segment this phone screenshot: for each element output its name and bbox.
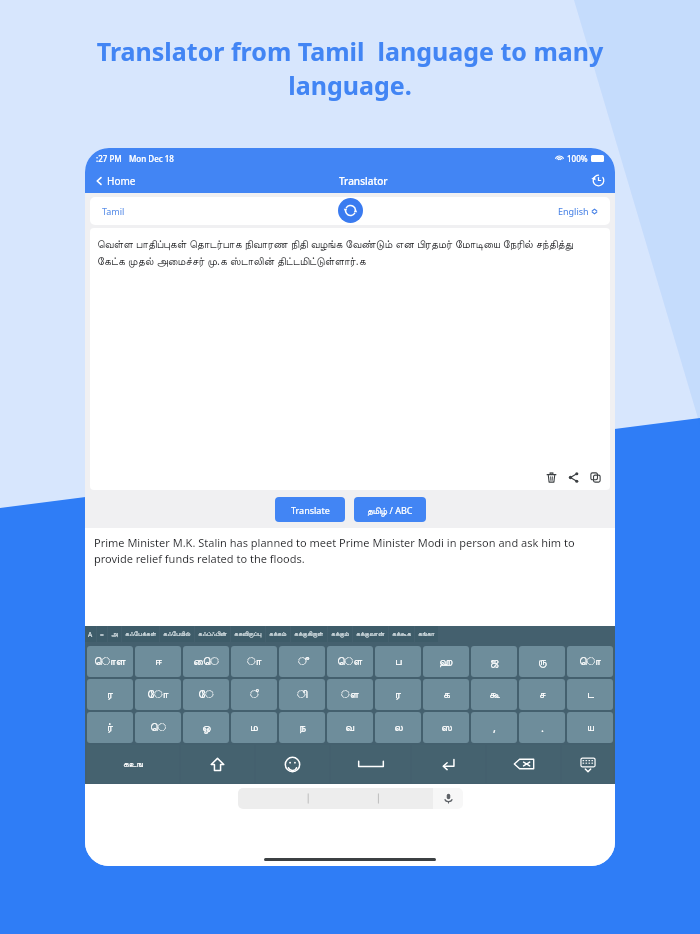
button[interactable]: ௌ [327, 646, 373, 677]
button[interactable]: Home [92, 172, 138, 190]
staticText: ஂ [250, 689, 259, 700]
button[interactable]: கங்கா [415, 626, 438, 642]
button[interactable]: History [589, 171, 608, 190]
button[interactable]: ஈ [135, 646, 181, 677]
staticText: கஉங [123, 760, 143, 769]
button[interactable]: Space [331, 745, 410, 783]
staticText: A [88, 630, 93, 639]
staticText: :27 PM [96, 153, 122, 164]
staticText: Translator from Tamil language to many l… [42, 34, 658, 103]
staticText: ந [299, 722, 306, 733]
staticText: 100% [567, 153, 588, 164]
button[interactable]: கஃப்ஃபின் [195, 626, 230, 642]
button[interactable]: Translate [275, 497, 345, 522]
button[interactable]: ஸ [423, 712, 469, 743]
button[interactable]: English [554, 201, 602, 221]
button[interactable]: Hide keyboard [562, 745, 613, 783]
button[interactable]: Swap languages [338, 198, 363, 223]
button[interactable]: கக்குகிறாள் [291, 626, 327, 642]
staticText: Home [107, 174, 136, 188]
button[interactable]: ஂ [231, 679, 277, 710]
staticText: ௗ [341, 689, 359, 700]
button[interactable]: தமிழ் / ABC [354, 497, 426, 522]
staticText: ஹ [439, 656, 453, 667]
button[interactable]: ீ [279, 646, 325, 677]
button[interactable]: Tamil [98, 201, 129, 221]
button[interactable]: = [97, 626, 107, 642]
button[interactable]: கஃபேயில் [160, 626, 194, 642]
button[interactable]: . [519, 712, 565, 743]
button[interactable]: கக்கும் [328, 626, 352, 642]
staticText: கக்குகிறாள் [294, 631, 324, 638]
staticText: ெ [150, 722, 167, 733]
staticText: கங்கா [418, 631, 435, 638]
button[interactable]: ௗ [327, 679, 373, 710]
staticText: கக்குவான் [356, 631, 385, 638]
button[interactable]: ல [375, 712, 421, 743]
staticText: கக்கம் [269, 631, 287, 638]
button[interactable]: ய [567, 712, 613, 743]
button[interactable]: ா [231, 646, 277, 677]
button[interactable]: Copy [587, 469, 603, 485]
button[interactable]: ப [375, 646, 421, 677]
staticText: ௌ [337, 656, 363, 667]
button[interactable]: ரு [519, 646, 565, 677]
staticText: அ [111, 631, 118, 638]
staticText: கூ [489, 689, 500, 700]
button[interactable]: ச [519, 679, 565, 710]
button[interactable]: ககவிருப்பு [231, 626, 265, 642]
button[interactable]: Share [565, 469, 581, 485]
button[interactable]: ஹ [423, 646, 469, 677]
staticText: ம [250, 722, 258, 733]
button[interactable]: Voice input [433, 788, 463, 809]
staticText: ா [247, 656, 262, 667]
button[interactable]: ந [279, 712, 325, 743]
staticText: ொ [579, 656, 601, 667]
button[interactable]: Emoji [256, 745, 329, 783]
button[interactable]: கஃபேக்கள் [122, 626, 159, 642]
button[interactable]: ஓ [183, 712, 229, 743]
button[interactable]: கக்கூக [389, 626, 414, 642]
button[interactable]: ட [567, 679, 613, 710]
button[interactable]: ி [279, 679, 325, 710]
button[interactable]: A [85, 626, 96, 642]
button[interactable]: ோ [135, 679, 181, 710]
button[interactable]: ர் [87, 712, 133, 743]
staticText: English [558, 205, 589, 217]
staticText: , [493, 720, 496, 735]
staticText: Mon Dec 18 [129, 153, 174, 164]
staticText: ய [587, 722, 594, 733]
staticText: தமிழ் / ABC [367, 504, 413, 516]
button[interactable]: ர [87, 679, 133, 710]
button[interactable]: க [423, 679, 469, 710]
staticText: க [443, 689, 450, 700]
staticText: ர் [107, 722, 113, 733]
button[interactable]: Backspace [487, 745, 560, 783]
button[interactable]: ஜ [471, 646, 517, 677]
button[interactable]: Language [87, 745, 179, 783]
button[interactable]: , [471, 712, 517, 743]
staticText: கஃபேயில் [163, 631, 191, 638]
staticText: ட [587, 689, 594, 700]
button[interactable]: ே [183, 679, 229, 710]
staticText: வெள்ள பாதிப்புகள் தொடர்பாக நிவாரண நிதி வ… [97, 236, 603, 269]
button[interactable]: வ [327, 712, 373, 743]
button[interactable]: ொள [87, 646, 133, 677]
button[interactable]: Shift [181, 745, 254, 783]
staticText: ோ [147, 689, 169, 700]
staticText: ல [394, 722, 403, 733]
button[interactable]: அ [108, 626, 121, 642]
button[interactable]: ெ [135, 712, 181, 743]
button[interactable]: கக்கம் [266, 626, 290, 642]
button[interactable]: கக்குவான் [353, 626, 388, 642]
button[interactable]: ொ [567, 646, 613, 677]
staticText: ச [539, 689, 546, 700]
button[interactable]: ெை [183, 646, 229, 677]
button[interactable]: Enter [412, 745, 485, 783]
staticText: ர [107, 689, 113, 700]
button[interactable]: Delete [543, 469, 559, 485]
button[interactable]: கூ [471, 679, 517, 710]
button[interactable]: ம [231, 712, 277, 743]
button[interactable]: ர [375, 679, 421, 710]
